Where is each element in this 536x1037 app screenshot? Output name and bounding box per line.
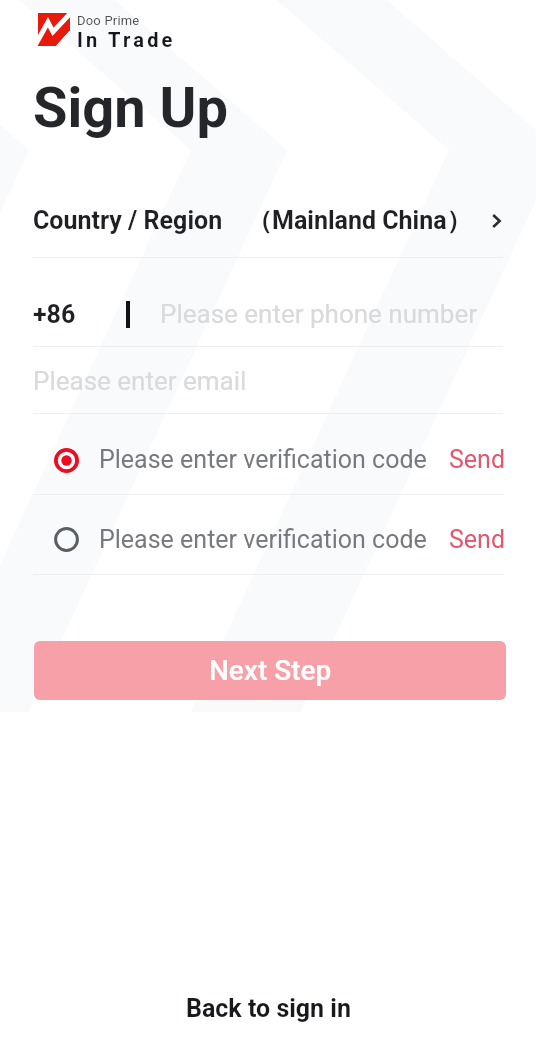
staticText: Sign Up <box>33 75 229 141</box>
staticText: Please enter verification code <box>99 525 427 554</box>
staticText: Next Step <box>209 654 332 687</box>
button[interactable]: Phone verification selected <box>44 438 88 482</box>
staticText: Country / Region <box>33 206 223 235</box>
button[interactable]: Email verification <box>44 517 88 561</box>
button[interactable]: Send <box>449 525 506 554</box>
staticText: （Mainland China） <box>247 205 472 236</box>
staticText: Please enter verification code <box>99 445 427 474</box>
button[interactable]: Send <box>449 445 506 474</box>
button[interactable]: Next Step <box>34 641 506 700</box>
staticText: Doo Prime <box>77 13 140 28</box>
staticText: Please enter email <box>33 366 247 396</box>
button[interactable]: Country / Region <box>33 191 506 250</box>
button[interactable]: Back to sign in <box>186 994 351 1023</box>
staticText: Please enter phone number <box>160 299 478 329</box>
button[interactable]: +86 <box>33 300 76 329</box>
staticText: In Trade <box>77 28 176 51</box>
